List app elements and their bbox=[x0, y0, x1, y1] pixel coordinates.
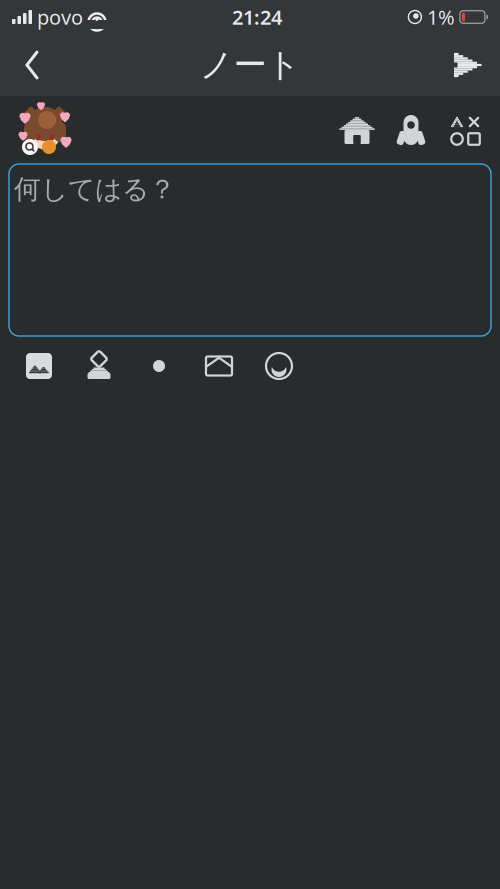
staticText: ノート bbox=[199, 44, 300, 85]
staticText: 何してはる？ bbox=[14, 173, 176, 206]
button[interactable]: 写真 bbox=[9, 343, 69, 389]
button[interactable]: 戻る bbox=[4, 38, 60, 92]
button[interactable]: 送信 bbox=[440, 38, 496, 92]
staticText: 21:24 bbox=[232, 4, 282, 30]
button[interactable]: ホーム bbox=[330, 104, 384, 156]
button[interactable]: 公開範囲 bbox=[129, 343, 189, 389]
button[interactable]: プロフィール bbox=[0, 98, 74, 162]
button[interactable]: メール bbox=[189, 343, 249, 389]
button[interactable]: 絵文字 bbox=[249, 343, 309, 389]
button[interactable]: タイムライン bbox=[384, 104, 438, 156]
staticText: 1% bbox=[427, 4, 455, 30]
staticText: povo bbox=[37, 4, 83, 30]
button[interactable]: スタンプ bbox=[69, 343, 129, 389]
button[interactable]: ゲーム bbox=[438, 104, 492, 156]
button[interactable]: 何してはる？ bbox=[9, 164, 491, 336]
